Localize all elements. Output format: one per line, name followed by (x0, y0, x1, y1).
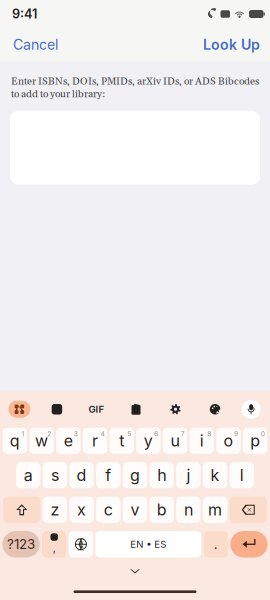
staticText: a (24, 466, 33, 485)
staticText: p (250, 431, 260, 450)
staticText: y (144, 431, 153, 450)
staticText: x (77, 500, 86, 519)
button[interactable]: Emoji (42, 531, 66, 557)
staticText: m (208, 500, 222, 519)
staticText: GIF (88, 403, 104, 415)
staticText: 9 (234, 430, 238, 438)
button[interactable]: Backspace (230, 496, 267, 523)
staticText: EN • ES (130, 538, 166, 550)
button[interactable]: GIF (83, 399, 109, 419)
staticText: r (92, 431, 98, 450)
button[interactable]: p (243, 428, 267, 454)
button[interactable]: a (16, 462, 40, 488)
staticText: 3 (74, 430, 78, 438)
button[interactable]: Keyboard modes (8, 401, 30, 418)
button[interactable]: k (203, 462, 227, 488)
staticText: o (223, 431, 233, 450)
button[interactable]: Return (230, 531, 268, 557)
button[interactable]: m (203, 497, 227, 523)
button[interactable]: w (29, 428, 54, 454)
button[interactable]: j (176, 462, 201, 488)
button[interactable]: n (176, 497, 201, 523)
button[interactable]: x (69, 497, 94, 523)
button[interactable]: Shift (3, 496, 40, 523)
staticText: n (184, 500, 193, 519)
staticText: 8 (207, 430, 211, 438)
button[interactable]: o (216, 428, 241, 454)
staticText: i (200, 431, 204, 450)
staticText: , (53, 541, 56, 554)
staticText: 0 (261, 430, 265, 438)
button[interactable]: i (189, 428, 214, 454)
button[interactable]: Look Up (193, 28, 270, 61)
button[interactable]: z (43, 497, 67, 523)
staticText: h (157, 466, 166, 485)
staticText: t (119, 431, 124, 450)
staticText: l (240, 466, 244, 485)
button[interactable]: Hide keyboard (115, 562, 155, 580)
staticText: c (104, 500, 113, 519)
staticText: ?123 (7, 536, 35, 552)
staticText: e (64, 431, 73, 450)
button[interactable]: Switch language (69, 531, 93, 557)
button[interactable]: Theme (202, 399, 228, 419)
button[interactable]: h (149, 462, 174, 488)
staticText: d (77, 466, 87, 485)
staticText: 5 (127, 430, 131, 438)
button[interactable]: d (69, 462, 94, 488)
staticText: Enter ISBNs, DOIs, PMIDs, arXiv IDs, or … (11, 75, 259, 101)
staticText: 2 (47, 430, 51, 438)
staticText: Cancel (13, 36, 58, 53)
button[interactable]: s (43, 462, 67, 488)
staticText: 1 (21, 430, 24, 438)
staticText: f (105, 466, 111, 485)
staticText: z (50, 500, 59, 519)
button[interactable]: e (56, 428, 80, 454)
button[interactable]: Settings (162, 399, 188, 419)
button[interactable]: l (230, 462, 254, 488)
button[interactable]: Stickers (44, 399, 70, 419)
button[interactable]: t (109, 428, 134, 454)
button[interactable]: q (3, 428, 27, 454)
button[interactable]: f (96, 462, 120, 488)
staticText: g (130, 466, 140, 485)
button[interactable]: Clipboard (123, 399, 149, 419)
button[interactable]: b (149, 497, 174, 523)
staticText: k (211, 466, 220, 485)
button[interactable]: v (123, 497, 147, 523)
staticText: s (51, 466, 59, 485)
staticText: q (10, 431, 20, 450)
staticText: 6 (154, 430, 158, 438)
staticText: 7 (181, 430, 185, 438)
staticText: w (35, 431, 48, 450)
staticText: v (130, 500, 139, 519)
staticText: b (157, 500, 167, 519)
staticText: 9:41 (12, 6, 37, 22)
button[interactable]: r (83, 428, 107, 454)
button[interactable]: Cancel (0, 28, 68, 61)
staticText: j (186, 466, 190, 485)
staticText: 4 (100, 430, 104, 438)
button[interactable]: c (96, 497, 120, 523)
staticText: u (170, 431, 179, 450)
staticText: Look Up (203, 36, 260, 53)
button[interactable]: EN • ES (95, 531, 201, 557)
button[interactable]: g (123, 462, 147, 488)
button[interactable]: u (163, 428, 187, 454)
button[interactable]: . (204, 531, 228, 557)
button[interactable]: Symbols (2, 531, 40, 557)
button[interactable]: Voice input (242, 400, 261, 419)
button[interactable]: y (136, 428, 160, 454)
staticText: . (214, 536, 218, 552)
